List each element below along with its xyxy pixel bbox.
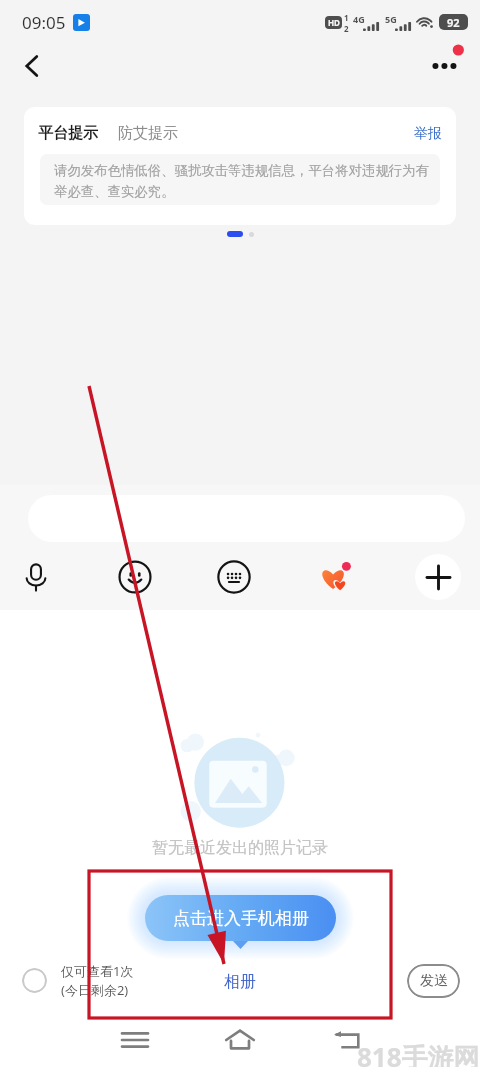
staticText: HD [328,17,340,28]
staticText: 仅可查看1次 [61,962,134,980]
button[interactable]: 仅可查看1次 [22,962,134,999]
button[interactable]: Keyboard [211,554,257,600]
staticText: 818手游网 [357,1039,480,1067]
button[interactable]: Home [218,1018,262,1062]
button[interactable]: Back [325,1018,369,1062]
staticText: 相册 [224,972,256,992]
button[interactable]: Gifts [312,554,358,600]
button[interactable]: Back [11,45,53,87]
staticText: 4G [353,13,365,25]
staticText: 发送 [420,972,448,990]
staticText: 1 [344,12,349,23]
button[interactable]: Recents [113,1018,157,1062]
staticText: 请勿发布色情低俗、骚扰攻击等违规信息，平台将对违规行为有举必查、查实必究。 [54,162,429,200]
staticText: 防艾提示 [118,124,178,143]
button[interactable]: More options [424,44,468,88]
staticText: 09:05 [22,11,66,34]
button[interactable]: Voice message [13,554,59,600]
staticText: 点击进入手机相册 [173,908,309,929]
button[interactable]: Emoji [112,554,158,600]
staticText: 5G [385,13,397,25]
button[interactable]: More [415,554,461,600]
staticText: 92 [447,15,460,30]
button[interactable] [28,495,465,542]
staticText: 暂无最近发出的照片记录 [152,838,328,858]
button[interactable]: 发送 [407,964,460,998]
button[interactable]: 举报 [414,125,442,143]
staticText: (今日剩余2) [61,981,129,999]
staticText: 2 [344,23,349,32]
staticText: 平台提示 [38,124,98,143]
staticText: 举报 [414,125,442,143]
button[interactable]: 点击进入手机相册 [145,895,336,941]
button[interactable]: 相册 [224,972,256,992]
button[interactable]: 平台提示 [24,107,456,225]
